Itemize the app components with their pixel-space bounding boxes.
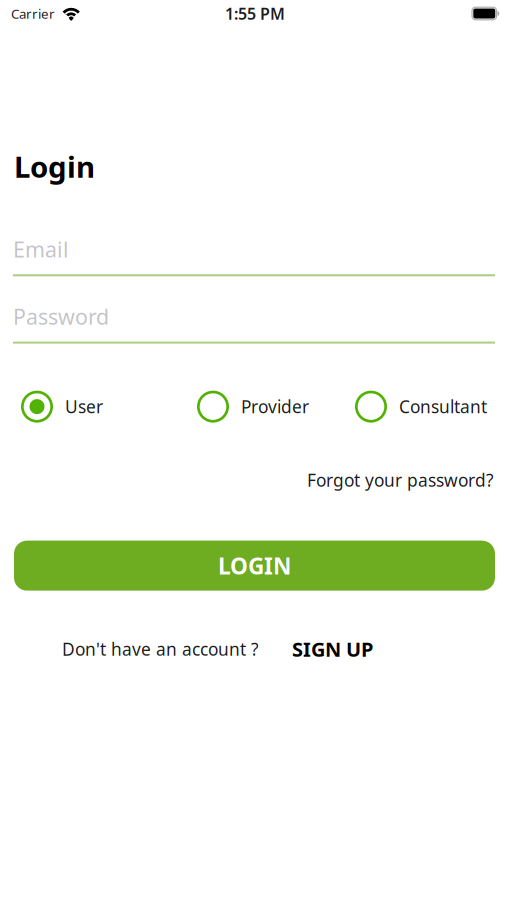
staticText: SIGN UP <box>292 636 373 662</box>
button[interactable]: Email <box>13 235 495 276</box>
button[interactable]: Provider <box>197 391 309 423</box>
staticText: Login <box>14 147 95 186</box>
staticText: Forgot your password? <box>307 469 494 492</box>
staticText: LOGIN <box>218 551 291 581</box>
button[interactable]: SIGN UP <box>292 636 373 662</box>
staticText: Don't have an account ? <box>62 637 259 660</box>
button[interactable]: User <box>21 391 103 423</box>
staticText: Password <box>13 302 109 331</box>
staticText: Carrier <box>11 5 55 22</box>
button[interactable]: Forgot your password? <box>307 469 494 492</box>
button[interactable]: Consultant <box>355 391 487 423</box>
button[interactable]: LOGIN <box>14 541 495 591</box>
staticText: User <box>65 395 103 418</box>
staticText: 1:55 PM <box>225 3 285 24</box>
button[interactable]: Password <box>13 302 495 344</box>
staticText: Provider <box>241 395 309 418</box>
staticText: Consultant <box>399 395 487 418</box>
staticText: Email <box>13 235 69 263</box>
